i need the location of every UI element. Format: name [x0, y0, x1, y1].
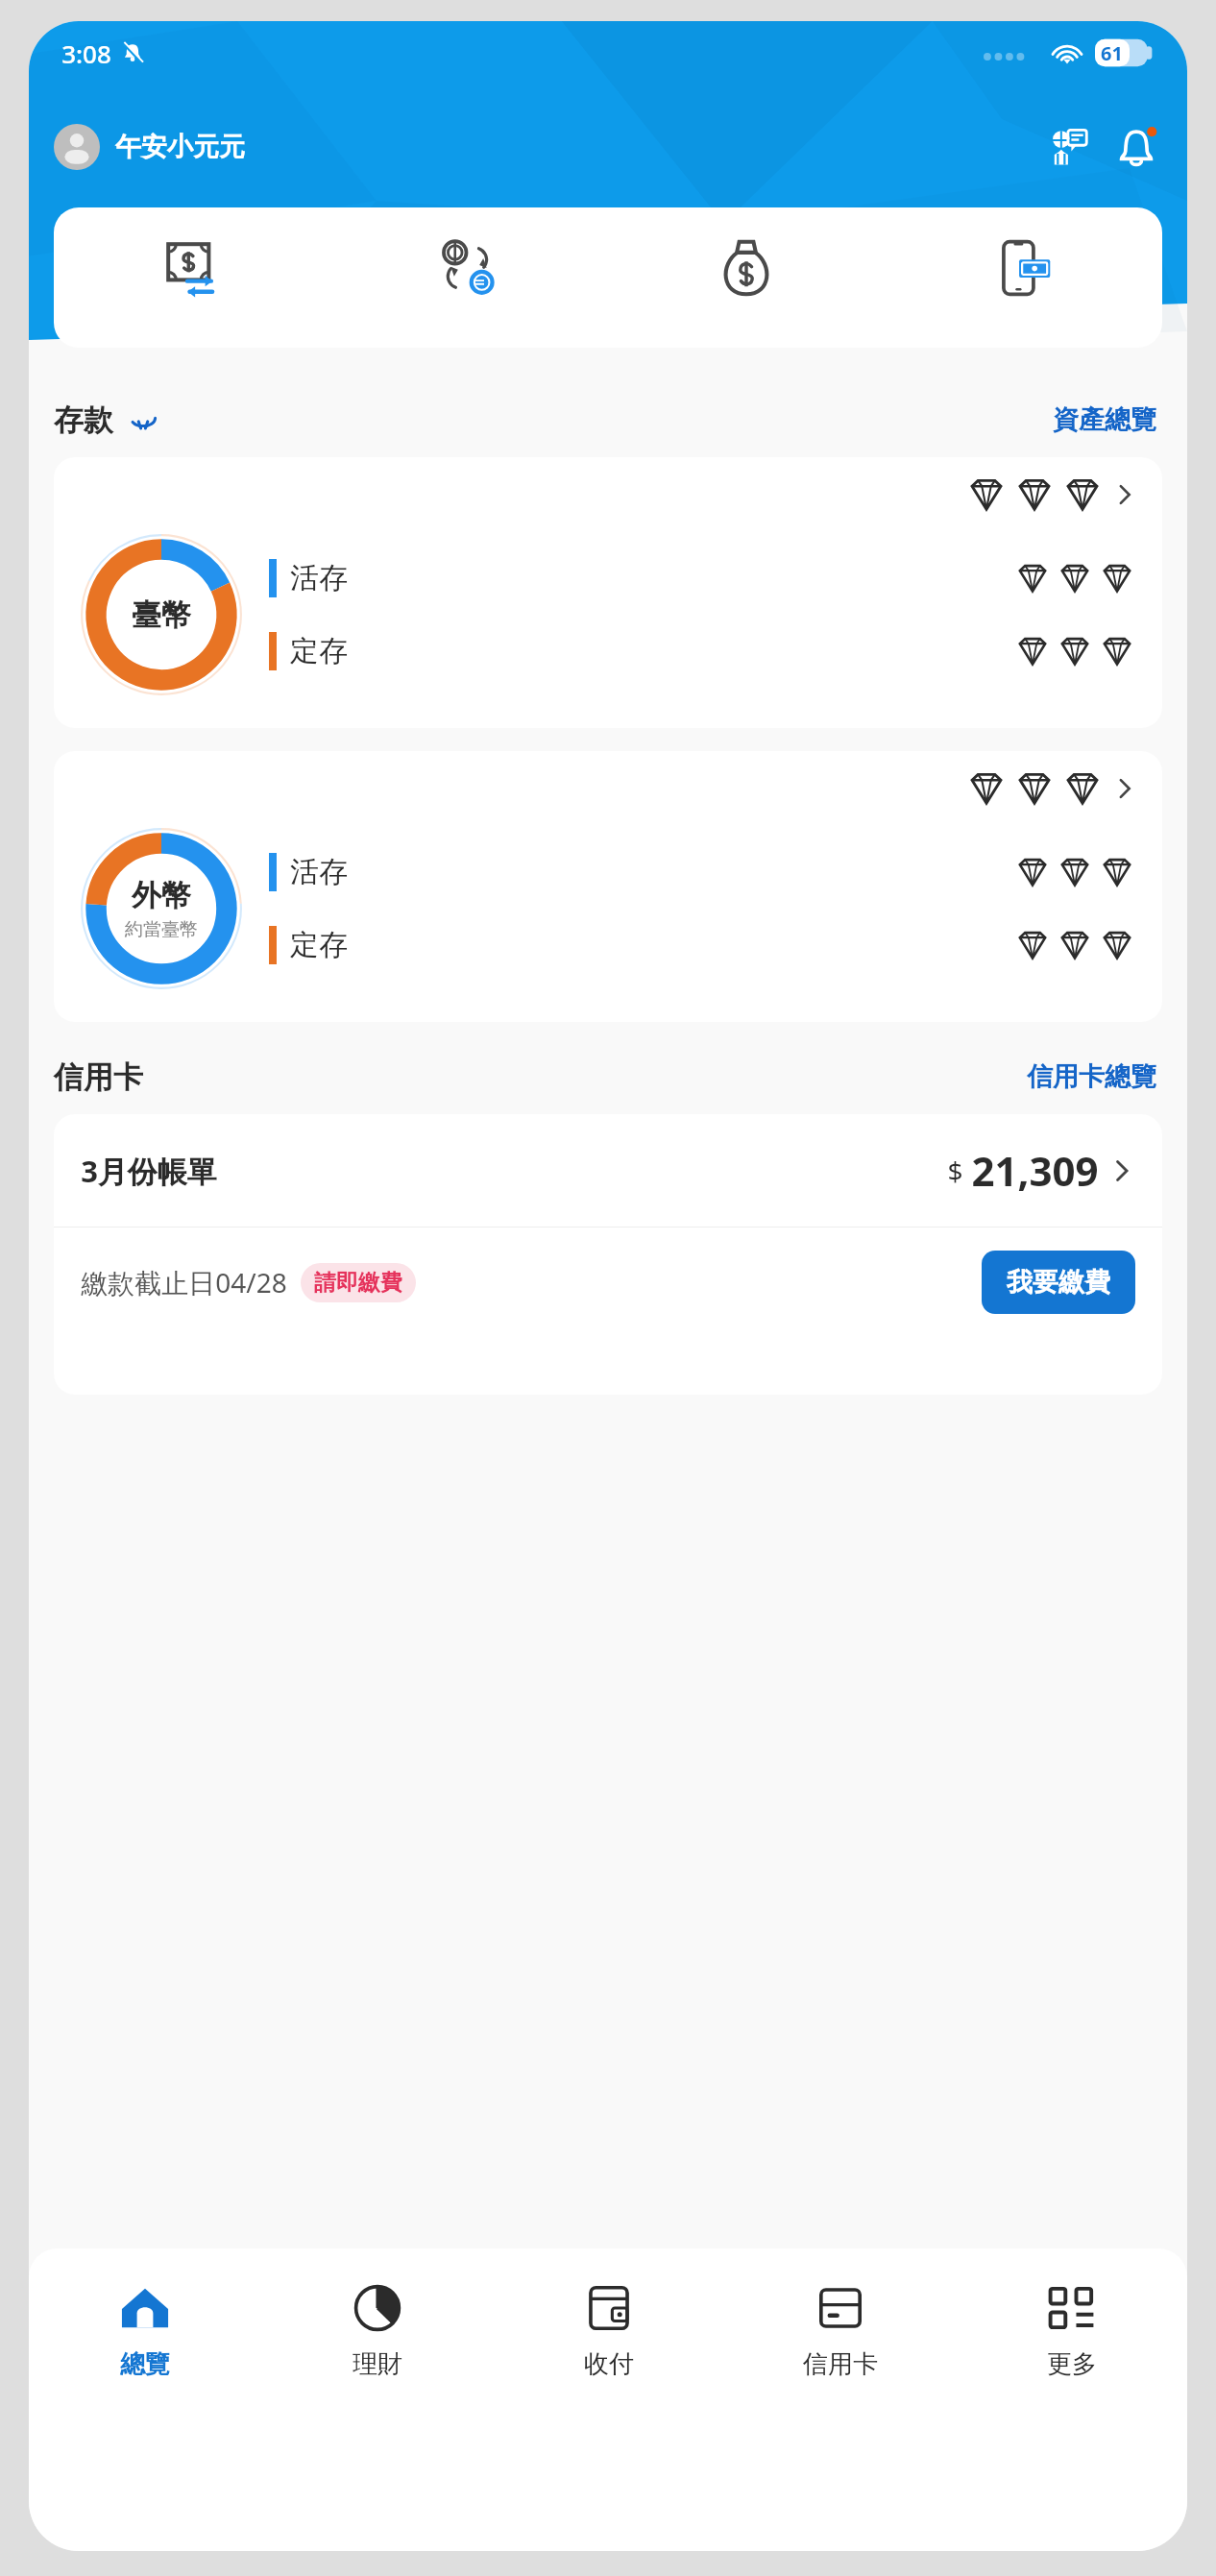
staticText: 繳款截止日04/28: [81, 1264, 287, 1300]
button[interactable]: 無卡提款: [885, 232, 1162, 323]
button[interactable]: 繳費: [607, 232, 885, 323]
button[interactable]: 轉帳: [54, 232, 330, 323]
staticText: 理財: [353, 2348, 402, 2380]
staticText: 資產總覽: [1053, 403, 1156, 436]
staticText: 信用卡: [803, 2348, 878, 2380]
button[interactable]: 總覽: [29, 2273, 261, 2388]
staticText: 活存: [290, 854, 348, 890]
staticText: 3月份帳單: [81, 1151, 217, 1191]
button[interactable]: 3月份帳單: [54, 1114, 1162, 1227]
button[interactable]: 午安小元元: [54, 124, 253, 170]
staticText: 臺幣: [132, 596, 191, 634]
staticText: 21,309: [971, 1143, 1099, 1198]
button[interactable]: 信用卡總覽: [1021, 1055, 1162, 1099]
button[interactable]: 外幣: [54, 751, 1162, 1022]
staticText: 61: [1101, 40, 1123, 66]
button[interactable]: 資產總覽: [1047, 398, 1162, 442]
staticText: 約當臺幣: [125, 918, 198, 941]
button[interactable]: Toggle balance visibility: [127, 403, 159, 436]
button[interactable]: 臺幣: [54, 457, 1162, 728]
staticText: 信用卡總覽: [1027, 1060, 1156, 1093]
staticText: 外幣: [132, 877, 191, 914]
button[interactable]: 我要繳費: [982, 1251, 1135, 1314]
staticText: 收付: [584, 2348, 634, 2380]
staticText: 定存: [290, 633, 348, 669]
button[interactable]: Customer service chat: [1041, 121, 1093, 173]
staticText: 請即繳費: [314, 1269, 402, 1297]
button[interactable]: 信用卡: [724, 2273, 956, 2388]
staticText: 更多: [1047, 2348, 1097, 2380]
button[interactable]: 收付: [493, 2273, 724, 2388]
button[interactable]: Notifications: [1110, 121, 1162, 173]
staticText: 3:08: [61, 36, 111, 70]
staticText: 總覽: [120, 2348, 170, 2380]
staticText: 定存: [290, 927, 348, 963]
button[interactable]: 換匯: [330, 232, 607, 323]
staticText: 存款: [54, 401, 113, 439]
staticText: $: [947, 1153, 963, 1189]
staticText: 信用卡: [54, 1058, 143, 1096]
staticText: 活存: [290, 560, 348, 596]
button[interactable]: 更多: [956, 2273, 1187, 2388]
button[interactable]: 理財: [261, 2273, 493, 2388]
staticText: 我要繳費: [1007, 1266, 1110, 1299]
staticText: 午安小元元: [115, 131, 245, 163]
